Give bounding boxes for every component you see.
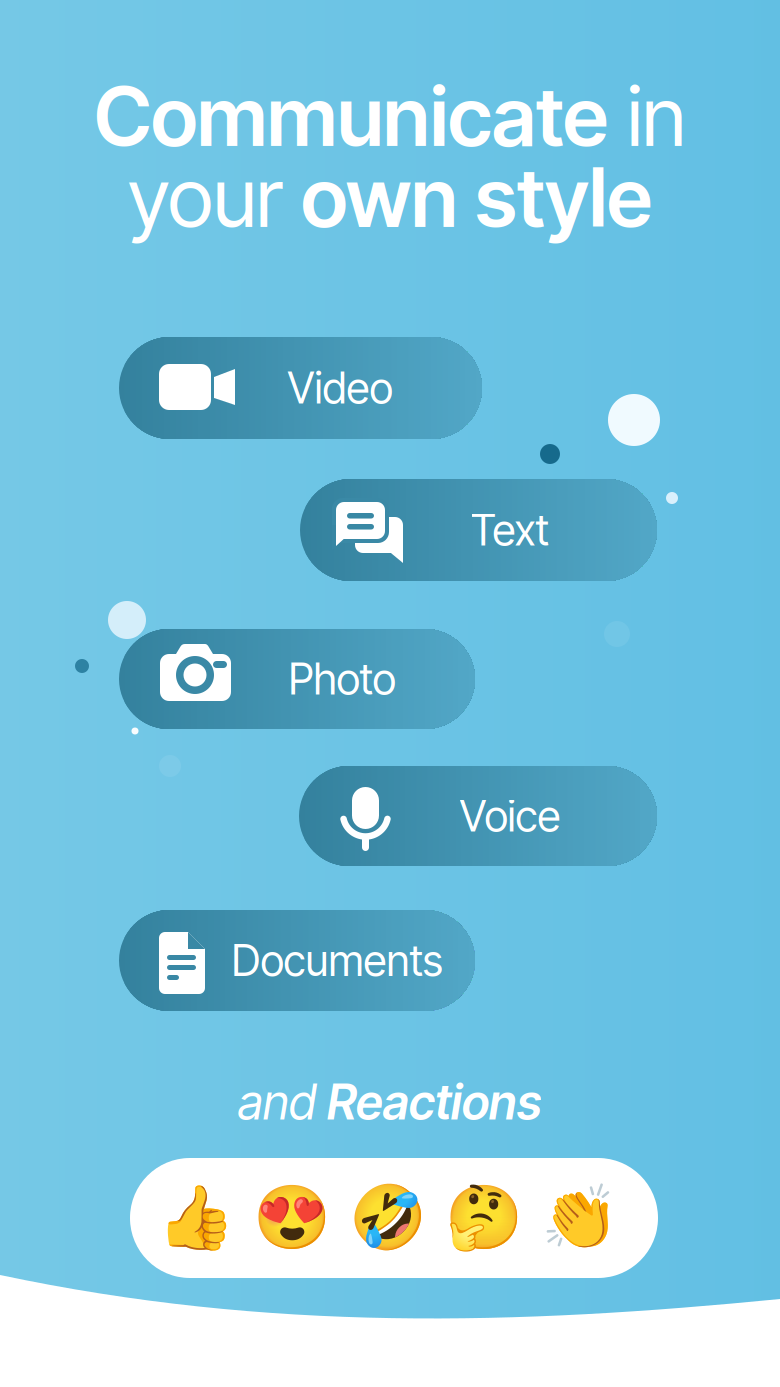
staticText: Communicate in [94,68,686,164]
button[interactable]: Voice [0,0,780,1387]
staticText: Documents [231,935,442,986]
staticText: Text [470,504,549,556]
staticText: Video [287,362,392,414]
staticText: 😍 [253,1181,331,1255]
staticText: 👍 [157,1181,235,1255]
button[interactable]: Text [0,0,780,1387]
button[interactable]: Video [0,0,780,1387]
staticText: your own style [128,149,652,245]
staticText: Voice [459,790,560,842]
staticText: and Reactions [238,1074,542,1130]
staticText: 🤔 [445,1181,523,1255]
staticText: Photo [288,653,395,705]
button[interactable]: Documents [0,0,780,1387]
button[interactable]: Photo [0,0,780,1387]
staticText: 👏 [541,1181,619,1255]
staticText: 🤣 [349,1181,427,1255]
